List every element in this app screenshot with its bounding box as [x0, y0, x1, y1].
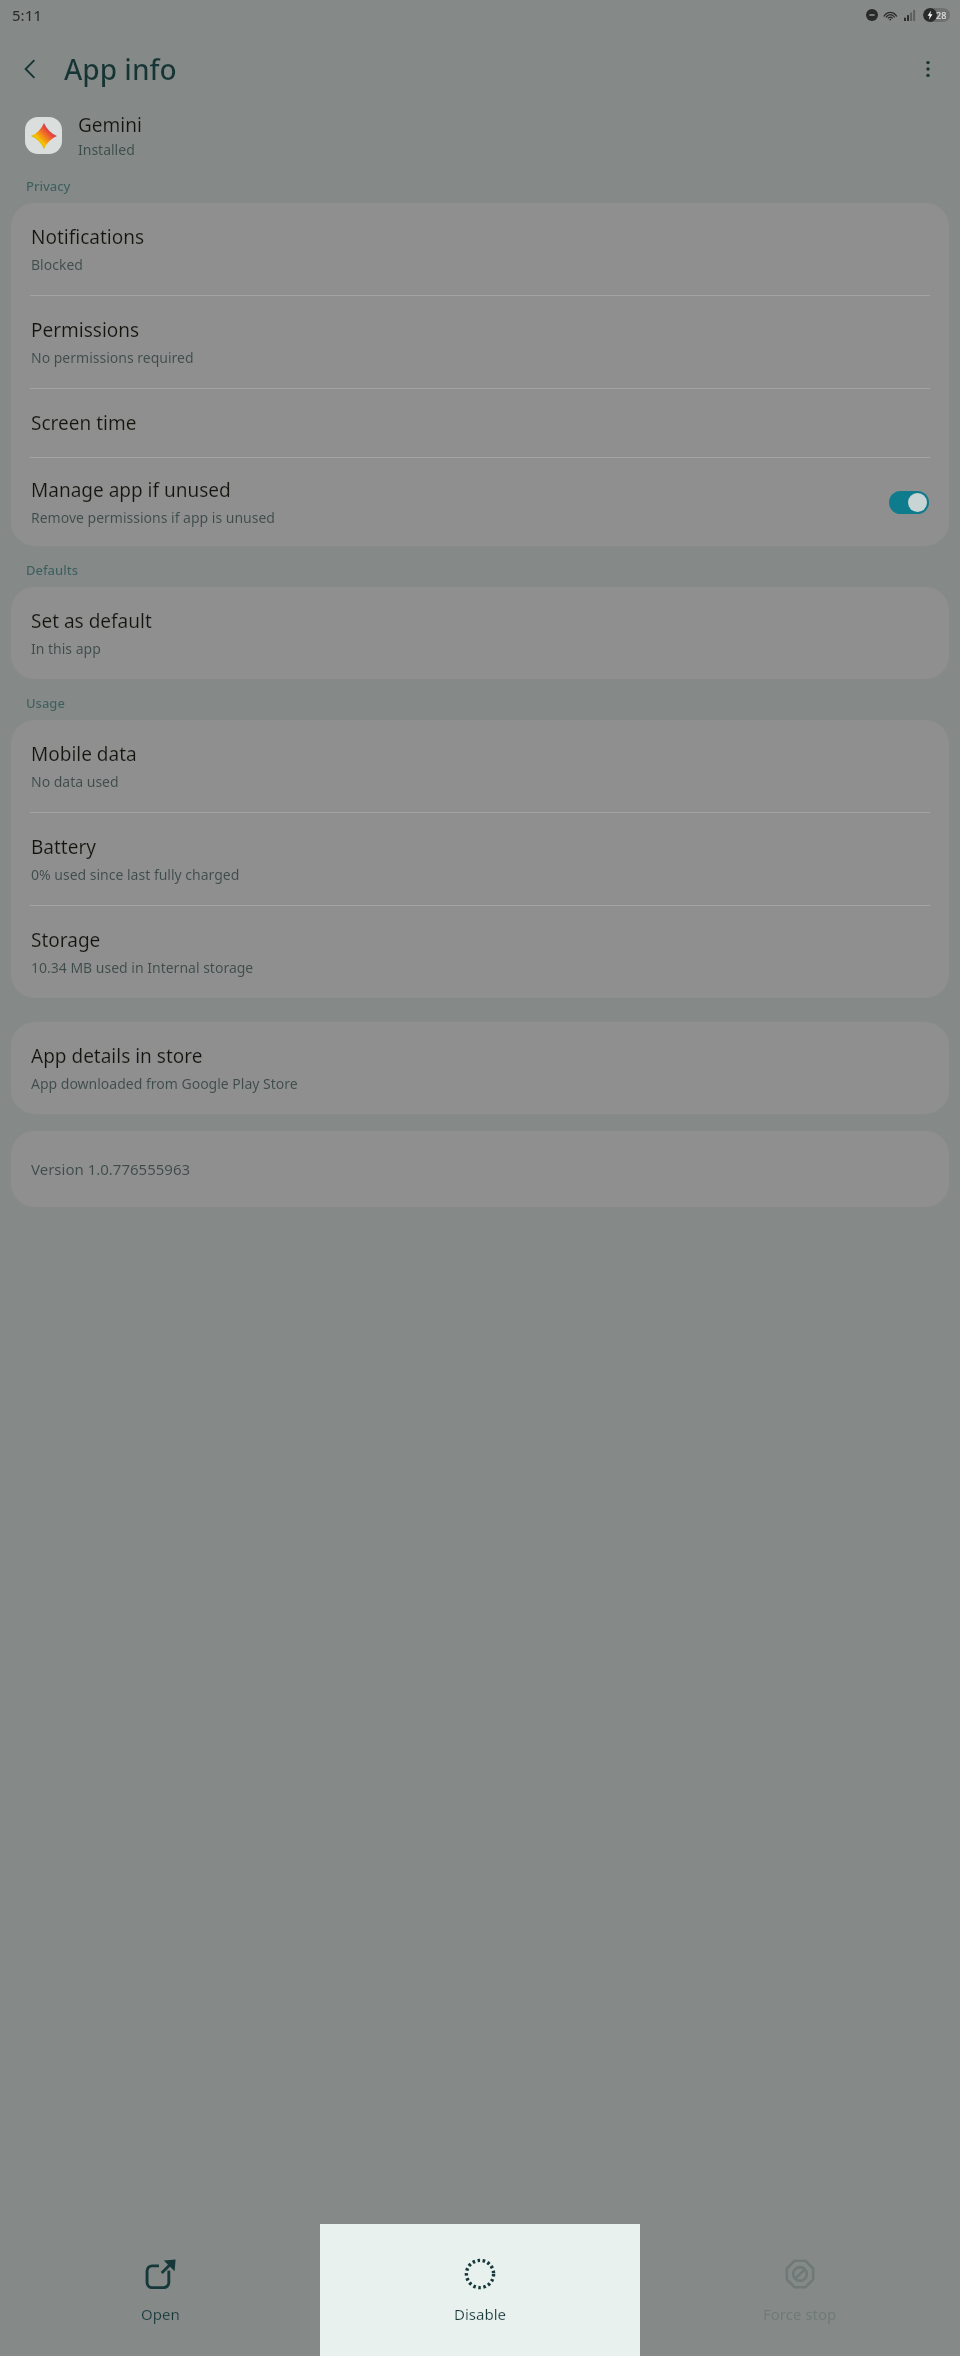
staticText: Defaults: [26, 561, 79, 579]
staticText: No permissions required: [31, 348, 194, 367]
staticText: Notifications: [31, 224, 145, 250]
staticText: App info: [64, 50, 177, 88]
staticText: Privacy: [26, 177, 71, 195]
staticText: Screen time: [31, 410, 137, 436]
staticText: Force stop: [763, 2304, 837, 2324]
staticText: 28: [936, 9, 947, 21]
staticText: Manage app if unused: [31, 477, 231, 503]
button[interactable]: Gemini: [25, 112, 960, 159]
button[interactable]: App details in store: [11, 1022, 949, 1114]
staticText: 10.34 MB used in Internal storage: [31, 958, 254, 977]
button[interactable]: Back: [6, 45, 54, 93]
staticText: Permissions: [31, 317, 140, 343]
staticText: Blocked: [31, 255, 83, 274]
staticText: 5:11: [12, 5, 42, 25]
staticText: Open: [141, 2304, 180, 2324]
staticText: App downloaded from Google Play Store: [31, 1074, 298, 1093]
button[interactable]: Version 1.0.776555963: [11, 1131, 949, 1207]
staticText: Set as default: [31, 608, 152, 634]
staticText: Disable: [454, 2304, 506, 2324]
staticText: Usage: [26, 694, 65, 712]
button[interactable]: Battery: [11, 813, 949, 905]
button[interactable]: Set as default: [11, 587, 949, 679]
staticText: Gemini: [78, 112, 142, 138]
staticText: Installed: [78, 140, 135, 159]
staticText: App details in store: [31, 1043, 203, 1069]
staticText: Mobile data: [31, 741, 137, 767]
button[interactable]: Storage: [11, 906, 949, 998]
button[interactable]: Open: [0, 2224, 320, 2356]
staticText: Remove permissions if app is unused: [31, 508, 275, 527]
staticText: 0% used since last fully charged: [31, 865, 240, 884]
staticText: Storage: [31, 927, 101, 953]
staticText: No data used: [31, 772, 119, 791]
button[interactable]: Manage app if unused: [11, 458, 949, 546]
staticText: In this app: [31, 639, 101, 658]
staticText: Battery: [31, 834, 96, 860]
button[interactable]: Permissions: [11, 296, 949, 388]
button[interactable]: Disable: [320, 2224, 640, 2356]
button[interactable]: Mobile data: [11, 720, 949, 812]
button[interactable]: More options: [904, 45, 952, 93]
button[interactable]: Screen time: [11, 389, 949, 457]
button[interactable]: Manage app if unused toggle, on: [889, 491, 929, 514]
staticText: Version 1.0.776555963: [31, 1159, 191, 1179]
button[interactable]: Notifications: [11, 203, 949, 295]
